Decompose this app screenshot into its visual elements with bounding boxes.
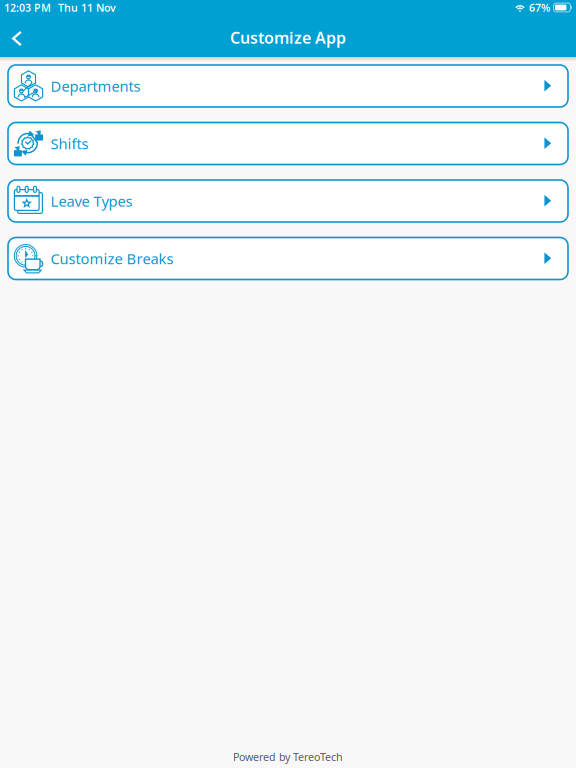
staticText: Departments	[50, 76, 140, 96]
button[interactable]: Back	[4, 20, 30, 57]
button[interactable]: Customize Breaks	[8, 237, 568, 279]
button[interactable]: Departments	[8, 65, 568, 107]
staticText: Shifts	[50, 134, 88, 153]
staticText: Thu 11 Nov	[58, 0, 116, 15]
staticText: Leave Types	[50, 191, 132, 211]
button[interactable]: Shifts	[8, 122, 568, 164]
button[interactable]: Leave Types	[8, 180, 568, 222]
staticText: 67%	[529, 0, 550, 15]
staticText: 12:03 PM	[4, 0, 51, 15]
staticText: Powered by TereoTech	[233, 750, 343, 764]
staticText: Customize App	[230, 27, 346, 48]
staticText: Customize Breaks	[50, 249, 173, 268]
